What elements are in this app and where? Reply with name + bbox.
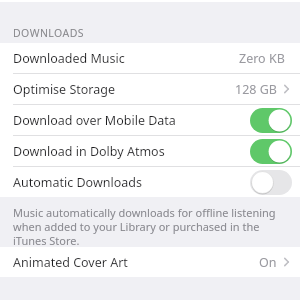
staticText: Downloaded Music (13, 50, 125, 67)
button[interactable]: Automatic Downloads (250, 170, 292, 195)
staticText: Animated Cover Art (13, 254, 128, 271)
button[interactable]: Downloaded Music (0, 43, 300, 73)
button[interactable]: Download in Dolby Atmos (250, 139, 292, 164)
button[interactable]: Optimise Storage (0, 74, 300, 104)
button[interactable]: Download over Mobile Data (0, 105, 300, 135)
staticText: Optimise Storage (13, 81, 115, 98)
staticText: Download over Mobile Data (13, 112, 176, 129)
button[interactable]: Download over Mobile Data (250, 108, 292, 133)
staticText: Music automatically downloads for offlin… (13, 205, 284, 247)
button[interactable]: Animated Cover Art (0, 247, 300, 277)
staticText: DOWNLOADS (13, 26, 84, 40)
staticText: Download in Dolby Atmos (13, 143, 165, 160)
staticText: Zero KB (239, 50, 285, 67)
button[interactable]: Automatic Downloads (0, 167, 300, 197)
staticText: Automatic Downloads (13, 174, 142, 191)
button[interactable]: Download in Dolby Atmos (0, 136, 300, 166)
staticText: On (259, 254, 277, 271)
staticText: 128 GB (235, 81, 277, 98)
